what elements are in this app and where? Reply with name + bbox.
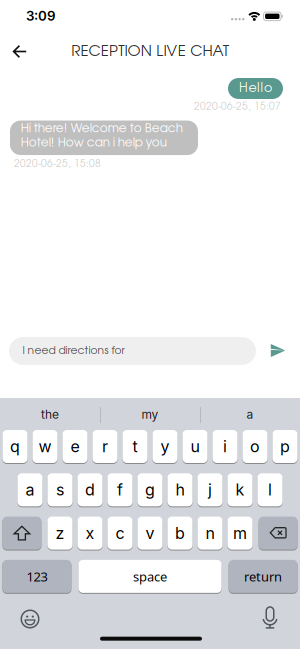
- button[interactable]: l: [257, 473, 283, 507]
- staticText: 3:09: [26, 8, 56, 24]
- button[interactable]: j: [197, 473, 223, 507]
- button[interactable]: n: [197, 516, 223, 550]
- staticText: p: [280, 437, 290, 456]
- button[interactable]: a: [17, 473, 43, 507]
- button[interactable]: c: [107, 516, 133, 550]
- staticText: Hello: [239, 83, 272, 94]
- button[interactable]: d: [77, 473, 103, 507]
- staticText: 2020-06-25, 15:07: [194, 102, 281, 112]
- button[interactable]: the: [5, 401, 95, 427]
- staticText: r: [102, 437, 108, 456]
- staticText: space: [133, 568, 167, 585]
- staticText: the: [41, 407, 59, 422]
- staticText: g: [145, 480, 155, 499]
- staticText: x: [85, 523, 94, 543]
- button[interactable]: a: [205, 401, 295, 427]
- staticText: m: [233, 523, 247, 543]
- button[interactable]: q: [2, 429, 28, 463]
- staticText: return: [244, 568, 282, 585]
- staticText: t: [132, 437, 137, 456]
- button[interactable]: w: [32, 429, 58, 463]
- staticText: u: [190, 437, 199, 456]
- staticText: n: [205, 523, 214, 543]
- button[interactable]: g: [137, 473, 163, 507]
- staticText: o: [250, 437, 260, 456]
- button[interactable]: i: [212, 429, 238, 463]
- button[interactable]: y: [152, 429, 178, 463]
- button[interactable]: h: [167, 473, 193, 507]
- staticText: a: [25, 480, 34, 499]
- staticText: f: [117, 480, 123, 499]
- staticText: e: [70, 437, 79, 456]
- button[interactable]: space: [78, 559, 222, 593]
- button[interactable]: Send: [271, 344, 286, 357]
- button[interactable]: f: [107, 473, 133, 507]
- staticText: q: [10, 437, 20, 456]
- button[interactable]: k: [227, 473, 253, 507]
- staticText: my: [141, 407, 158, 422]
- button[interactable]: z: [47, 516, 73, 550]
- staticText: I need directions for: [22, 346, 124, 356]
- button[interactable]: p: [272, 429, 298, 463]
- staticText: Hotel! How can i help you: [21, 138, 167, 149]
- button[interactable]: u: [182, 429, 208, 463]
- staticText: i: [223, 437, 227, 456]
- button[interactable]: b: [167, 516, 193, 550]
- staticText: w: [38, 437, 51, 456]
- button[interactable]: 123: [2, 559, 71, 593]
- button[interactable]: Emoji: [20, 609, 40, 629]
- button[interactable]: I need directions for: [9, 337, 256, 365]
- button[interactable]: r: [92, 429, 118, 463]
- button[interactable]: Shift: [2, 516, 41, 550]
- staticText: 2020-06-25, 15:08: [14, 160, 101, 169]
- staticText: v: [145, 523, 154, 543]
- button[interactable]: s: [47, 473, 73, 507]
- button[interactable]: o: [242, 429, 268, 463]
- staticText: Hi there! Welcome to Beach: [21, 123, 183, 134]
- staticText: d: [85, 480, 95, 499]
- button[interactable]: my: [105, 401, 195, 427]
- staticText: k: [235, 480, 244, 499]
- button[interactable]: Delete: [259, 516, 298, 550]
- staticText: b: [175, 523, 185, 543]
- staticText: j: [208, 480, 212, 499]
- button[interactable]: m: [227, 516, 253, 550]
- button[interactable]: Dictate: [261, 606, 279, 630]
- staticText: RECEPTION LIVE CHAT: [71, 45, 229, 59]
- button[interactable]: t: [122, 429, 148, 463]
- button[interactable]: v: [137, 516, 163, 550]
- staticText: 123: [26, 568, 47, 585]
- staticText: s: [56, 480, 64, 499]
- button[interactable]: x: [77, 516, 103, 550]
- button[interactable]: e: [62, 429, 88, 463]
- button[interactable]: return: [229, 559, 298, 593]
- staticText: z: [55, 523, 64, 543]
- staticText: c: [115, 523, 124, 543]
- staticText: a: [246, 407, 253, 422]
- staticText: l: [268, 480, 272, 499]
- staticText: y: [160, 437, 169, 456]
- staticText: h: [175, 480, 184, 499]
- button[interactable]: Back: [5, 37, 35, 65]
